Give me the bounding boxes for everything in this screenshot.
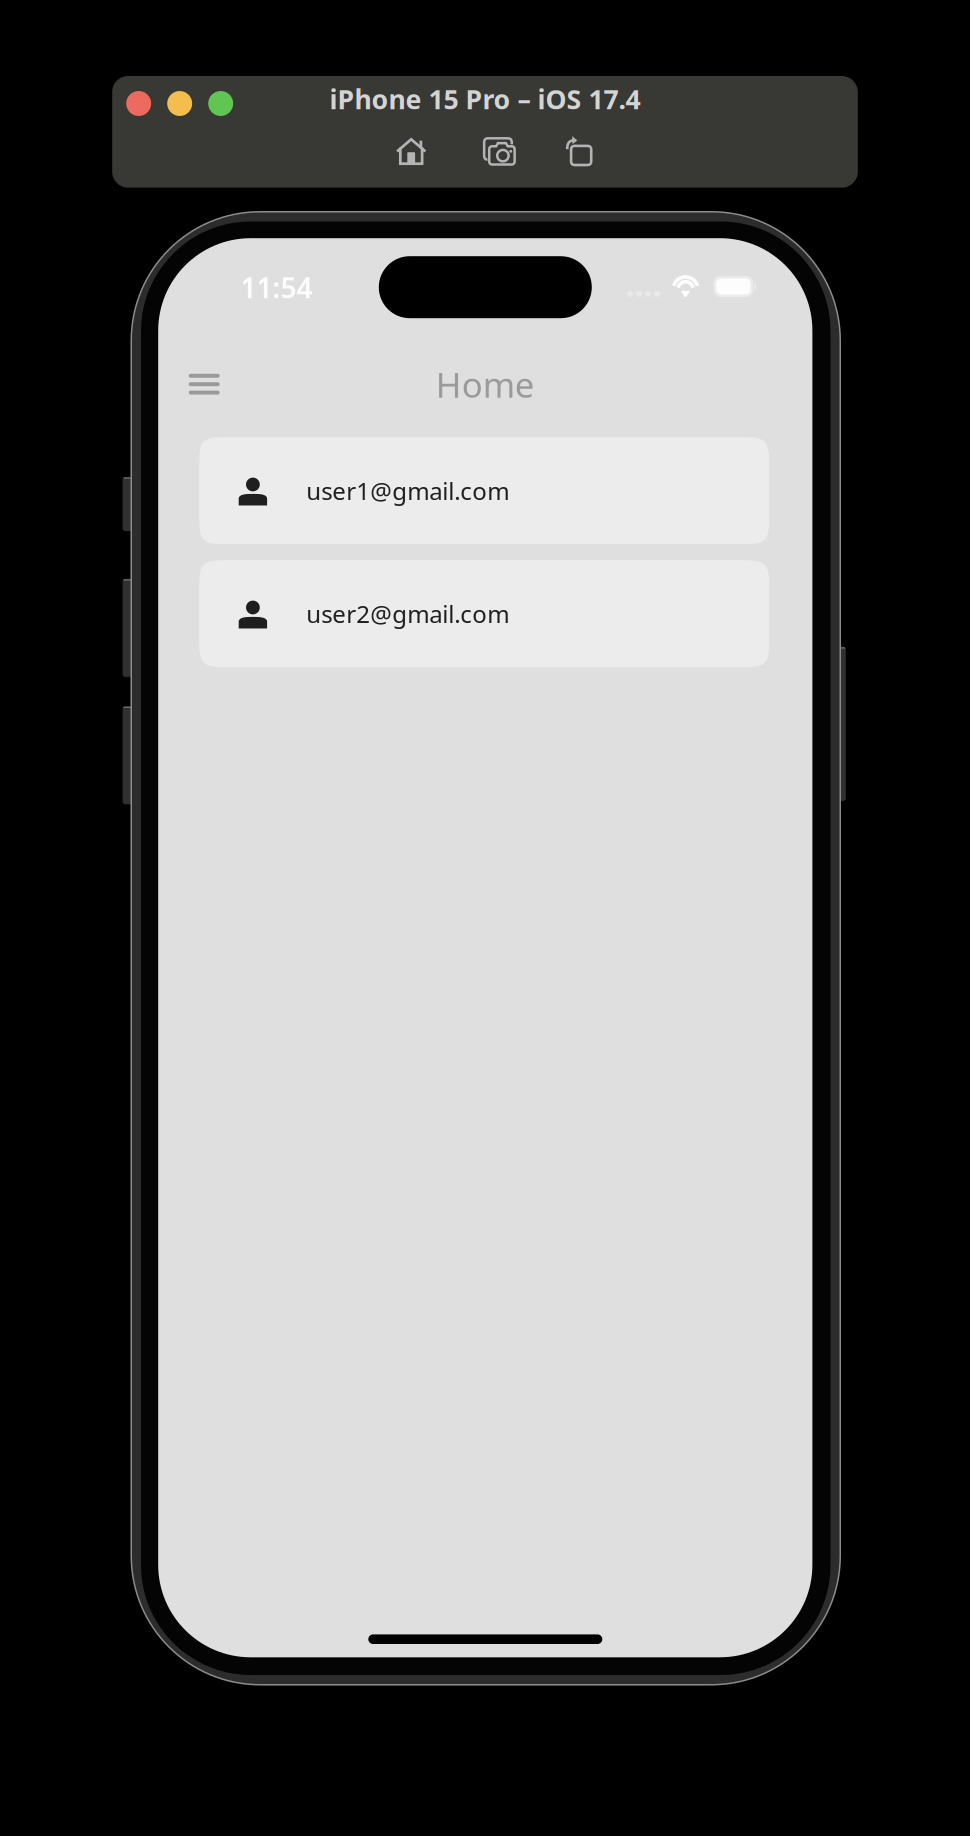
staticText: user2@gmail.com — [306, 598, 509, 630]
button[interactable]: Home — [384, 129, 438, 173]
staticText: user1@gmail.com — [306, 475, 509, 507]
staticText: Home — [436, 361, 535, 407]
button[interactable]: Screenshot — [472, 130, 526, 174]
button[interactable]: Zoom window — [208, 91, 233, 116]
button[interactable]: Menu — [173, 358, 235, 410]
staticText: iPhone 15 Pro – iOS 17.4 — [329, 81, 640, 117]
button[interactable]: Rotate — [552, 129, 606, 173]
button[interactable]: user2@gmail.com — [199, 560, 769, 667]
button[interactable]: Close window — [126, 91, 151, 116]
staticText: 11:54 — [240, 269, 312, 306]
button[interactable]: Minimize window — [167, 91, 192, 116]
button[interactable]: user1@gmail.com — [199, 437, 769, 544]
